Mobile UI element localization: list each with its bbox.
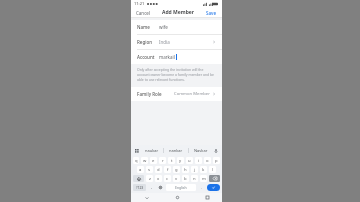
button[interactable]: d: [155, 166, 162, 173]
staticText: d: [157, 167, 160, 173]
button[interactable]: o: [204, 157, 211, 164]
button[interactable]: Clipboard: [134, 148, 140, 154]
button[interactable]: b: [182, 175, 189, 182]
button[interactable]: e: [150, 157, 157, 164]
staticText: t: [171, 158, 173, 164]
staticText: m: [202, 176, 206, 182]
button[interactable]: Cancel: [135, 8, 152, 18]
button[interactable]: Account: [131, 50, 222, 64]
staticText: h: [184, 167, 187, 173]
staticText: o: [206, 158, 209, 164]
staticText: Region: [137, 39, 159, 45]
button[interactable]: f: [164, 166, 171, 173]
staticText: naukar: [145, 148, 159, 153]
button[interactable]: r: [159, 157, 166, 164]
button[interactable]: naukar: [140, 145, 163, 156]
staticText: Common Member: [174, 91, 210, 97]
button[interactable]: w: [141, 157, 148, 164]
staticText: India: [159, 39, 170, 45]
button[interactable]: Name: [131, 20, 222, 34]
staticText: nankar: [169, 148, 183, 153]
staticText: z: [149, 176, 151, 182]
staticText: i: [198, 158, 200, 164]
staticText: q: [135, 158, 138, 164]
staticText: Family Role: [137, 91, 162, 97]
staticText: x: [157, 176, 160, 182]
staticText: a: [139, 167, 142, 173]
staticText: c: [166, 176, 169, 182]
staticText: y: [179, 158, 182, 164]
staticText: ?123: [136, 185, 144, 190]
button[interactable]: ?123: [133, 184, 146, 191]
staticText: r: [162, 158, 164, 164]
button[interactable]: ,: [148, 184, 155, 191]
button[interactable]: .: [198, 184, 205, 191]
button[interactable]: m: [200, 175, 207, 182]
button[interactable]: c: [164, 175, 171, 182]
button[interactable]: z: [146, 175, 153, 182]
button[interactable]: y: [177, 157, 184, 164]
staticText: wife: [159, 24, 168, 30]
button[interactable]: Voice input: [213, 148, 219, 154]
staticText: f: [167, 167, 169, 173]
staticText: p: [215, 158, 218, 164]
staticText: .: [201, 185, 203, 190]
button[interactable]: Family Role: [131, 87, 222, 101]
staticText: w: [143, 158, 147, 164]
button[interactable]: nankar: [164, 145, 188, 156]
staticText: Only after accepting the invitation will…: [137, 67, 216, 82]
button[interactable]: g: [173, 166, 180, 173]
staticText: English: [175, 185, 187, 190]
staticText: Account: [137, 54, 159, 60]
staticText: Navkar: [194, 148, 208, 153]
staticText: s: [148, 167, 151, 173]
button[interactable]: Back: [131, 193, 162, 202]
button[interactable]: n: [191, 175, 198, 182]
button[interactable]: Navkar: [189, 145, 213, 156]
staticText: n: [193, 176, 196, 182]
button[interactable]: Recent apps: [192, 193, 222, 202]
button[interactable]: p: [213, 157, 220, 164]
staticText: b: [184, 176, 187, 182]
button[interactable]: h: [182, 166, 189, 173]
staticText: e: [152, 158, 155, 164]
staticText: u: [188, 158, 191, 164]
button[interactable]: Save: [205, 8, 218, 18]
button[interactable]: q: [133, 157, 139, 164]
button[interactable]: v: [173, 175, 180, 182]
staticText: j: [194, 167, 196, 173]
button[interactable]: u: [186, 157, 193, 164]
button[interactable]: k: [200, 166, 207, 173]
staticText: markail: [159, 54, 175, 60]
staticText: Cancel: [136, 10, 151, 16]
button[interactable]: x: [155, 175, 162, 182]
staticText: Add Member: [162, 9, 195, 16]
button[interactable]: Enter: [207, 184, 220, 191]
button[interactable]: s: [146, 166, 153, 173]
button[interactable]: l: [209, 166, 216, 173]
button[interactable]: i: [195, 157, 202, 164]
button[interactable]: Backspace: [209, 175, 220, 182]
staticText: 11:21: [134, 1, 145, 6]
button[interactable]: Shift: [133, 175, 144, 182]
staticText: v: [175, 176, 178, 182]
staticText: Save: [206, 10, 217, 16]
button[interactable]: Home: [162, 193, 192, 202]
button[interactable]: Keyboard settings: [157, 184, 164, 191]
button[interactable]: t: [168, 157, 175, 164]
button[interactable]: English: [166, 184, 196, 191]
staticText: ,: [151, 184, 153, 189]
button[interactable]: Region: [131, 35, 222, 49]
staticText: g: [175, 167, 178, 173]
staticText: Name: [137, 24, 159, 30]
staticText: l: [212, 167, 214, 173]
button[interactable]: a: [137, 166, 144, 173]
button[interactable]: j: [191, 166, 198, 173]
staticText: k: [202, 167, 205, 173]
